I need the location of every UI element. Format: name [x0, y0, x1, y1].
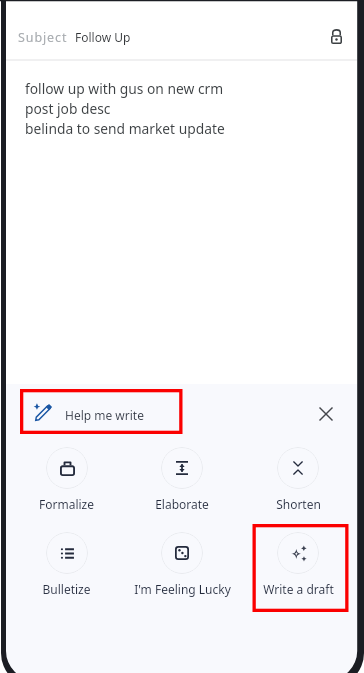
staticText: Help me write — [65, 407, 144, 423]
staticText: Follow Up — [75, 29, 131, 45]
button[interactable]: Write a draft — [240, 532, 356, 597]
button[interactable]: Close — [307, 395, 345, 433]
staticText: Write a draft — [263, 581, 334, 597]
staticText: Formalize — [39, 496, 94, 512]
staticText: belinda to send market update — [25, 119, 225, 138]
staticText: Elaborate — [155, 496, 209, 512]
staticText: follow up with gus on new crm — [25, 79, 224, 98]
button[interactable]: Confidential mode — [321, 21, 351, 51]
staticText: Shorten — [276, 496, 321, 512]
button[interactable]: Help me write — [6, 398, 154, 431]
staticText: Subject — [18, 29, 68, 46]
button[interactable]: Formalize — [9, 447, 124, 512]
staticText: I'm Feeling Lucky — [134, 581, 231, 597]
staticText: post job desc — [25, 99, 111, 118]
button[interactable]: Shorten — [240, 447, 356, 512]
button[interactable]: Bulletize — [9, 532, 124, 597]
button[interactable]: Elaborate — [124, 447, 240, 512]
button[interactable]: I'm Feeling Lucky — [124, 532, 240, 597]
staticText: Bulletize — [42, 581, 91, 597]
